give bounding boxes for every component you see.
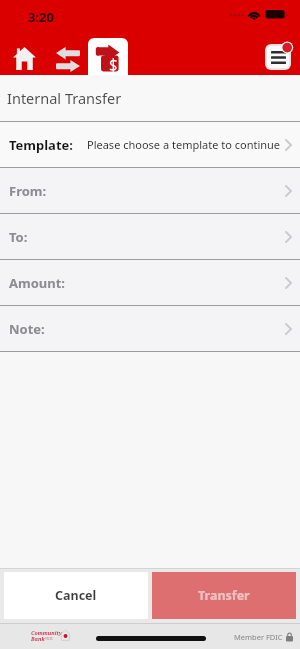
button[interactable]: Home xyxy=(13,47,36,70)
staticText: 3:20 xyxy=(28,8,54,26)
button[interactable]: Amount: xyxy=(0,260,300,305)
staticText: FDIC xyxy=(45,636,53,641)
button[interactable]: Transfer xyxy=(152,572,296,619)
button[interactable]: Menu xyxy=(262,41,294,73)
staticText: From: xyxy=(9,182,47,200)
staticText: Cancel xyxy=(55,587,97,604)
button[interactable]: From: xyxy=(0,168,300,213)
button[interactable]: To: xyxy=(0,214,300,259)
button[interactable]: Cancel xyxy=(4,572,148,619)
staticText: Template: xyxy=(9,136,73,154)
staticText: Amount: xyxy=(9,274,65,292)
button[interactable]: Transfers xyxy=(56,47,80,72)
button[interactable]: Template: xyxy=(0,122,300,167)
staticText: Community xyxy=(31,629,62,636)
button[interactable]: Internal Transfer xyxy=(88,38,128,75)
staticText: Internal Transfer xyxy=(7,88,122,108)
staticText: Member FDIC xyxy=(234,632,283,642)
staticText: Please choose a template to continue xyxy=(87,137,281,152)
staticText: Note: xyxy=(9,320,45,338)
staticText: Bank xyxy=(31,635,45,642)
button[interactable]: Note: xyxy=(0,306,300,351)
staticText: Transfer xyxy=(198,587,250,604)
staticText: To: xyxy=(9,228,28,246)
